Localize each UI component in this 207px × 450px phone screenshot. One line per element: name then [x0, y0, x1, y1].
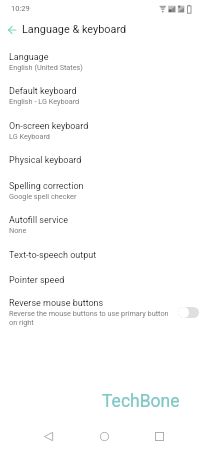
button[interactable]: Default keyboard: [0, 79, 207, 113]
staticText: Pointer speed: [9, 275, 65, 286]
staticText: 10:29: [11, 4, 30, 13]
staticText: TechBone: [102, 391, 180, 412]
button[interactable]: On-screen keyboard: [0, 113, 207, 148]
staticText: Physical keyboard: [9, 155, 82, 166]
staticText: On-screen keyboard: [9, 121, 89, 132]
staticText: Text-to-speech output: [9, 250, 97, 261]
button[interactable]: Physical keyboard: [0, 148, 207, 173]
button[interactable]: Spelling correction: [0, 173, 207, 208]
button[interactable]: Reverse mouse buttons toggle: [178, 307, 199, 318]
staticText: Reverse the mouse buttons to use primary…: [9, 309, 174, 327]
staticText: Google spell checker: [9, 192, 77, 201]
button[interactable]: Home: [93, 425, 115, 447]
button[interactable]: Back: [37, 425, 59, 447]
staticText: Language & keyboard: [22, 23, 127, 36]
staticText: Language: [9, 52, 49, 63]
staticText: English - LG Keyboard: [9, 97, 80, 106]
button[interactable]: Back: [2, 20, 21, 39]
staticText: Autofill service: [9, 215, 68, 226]
button[interactable]: Recents: [148, 425, 170, 447]
button[interactable]: Language: [0, 45, 207, 79]
button[interactable]: Pointer speed: [0, 268, 207, 292]
staticText: Spelling correction: [9, 181, 84, 192]
button[interactable]: Autofill service: [0, 208, 207, 242]
staticText: LG Keyboard: [9, 132, 50, 141]
staticText: English (United States): [9, 63, 83, 72]
staticText: Reverse mouse buttons: [9, 298, 104, 309]
button[interactable]: Reverse mouse buttons: [0, 292, 207, 332]
staticText: Default keyboard: [9, 86, 77, 97]
staticText: None: [9, 226, 27, 235]
button[interactable]: Text-to-speech output: [0, 242, 207, 268]
